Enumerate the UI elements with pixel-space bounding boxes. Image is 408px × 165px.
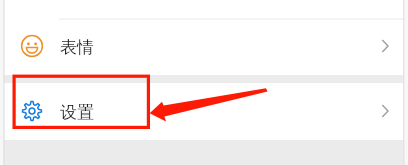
- other: Settings: [370, 83, 408, 140]
- other: Emoji: [370, 20, 408, 75]
- button[interactable]: 设置: [0, 83, 408, 140]
- staticText: 设置: [60, 102, 94, 123]
- button[interactable]: 表情: [0, 20, 408, 75]
- staticText: 表情: [60, 37, 94, 58]
